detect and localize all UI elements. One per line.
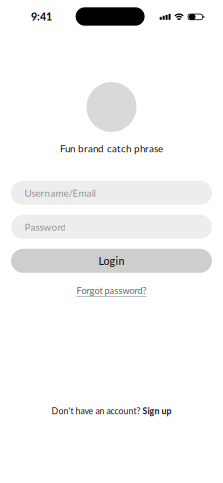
staticText: Login [98, 254, 124, 267]
button[interactable]: Username/Email [11, 181, 212, 205]
button[interactable]: Don't have an account? Sign up [51, 406, 171, 416]
button[interactable]: Forgot password? [76, 285, 146, 296]
button[interactable]: Password [11, 215, 212, 239]
staticText: Username/Email [24, 187, 95, 199]
staticText: Forgot password? [76, 285, 146, 296]
staticText: Password [24, 221, 66, 233]
staticText: Fun brand catch phrase [60, 142, 163, 154]
staticText: 9:41 [31, 10, 52, 23]
staticText: Don't have an account? Sign up [51, 406, 171, 416]
button[interactable]: Login [11, 249, 212, 273]
